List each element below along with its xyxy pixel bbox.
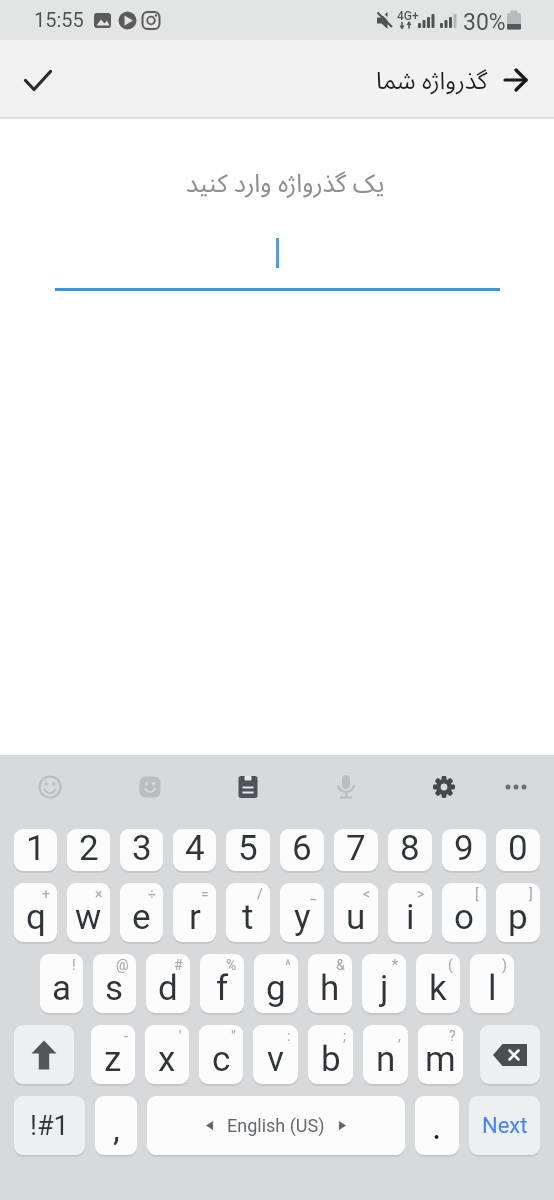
button[interactable]: 0 <box>496 829 540 871</box>
button[interactable]: h <box>308 954 352 1013</box>
button[interactable]: 8 <box>388 829 432 871</box>
staticText: r <box>189 897 201 938</box>
staticText: * <box>392 957 399 973</box>
staticText: ] <box>529 886 533 902</box>
button[interactable]: s <box>93 954 136 1013</box>
button[interactable]: !#1 <box>14 1096 85 1155</box>
button[interactable] <box>0 755 93 819</box>
button[interactable] <box>10 57 66 113</box>
button[interactable]: English (US) <box>147 1096 405 1155</box>
staticText: e <box>132 897 151 938</box>
staticText: p <box>508 897 528 938</box>
button[interactable]: m <box>418 1025 463 1084</box>
staticText: . <box>432 1106 442 1148</box>
button[interactable]: u <box>334 883 378 942</box>
staticText: c <box>212 1039 231 1080</box>
button[interactable]: 6 <box>280 829 324 871</box>
staticText: 1 <box>26 829 46 869</box>
staticText: i <box>406 897 415 938</box>
button[interactable]: 3 <box>120 829 163 871</box>
button[interactable]: n <box>363 1025 408 1084</box>
button[interactable]: o <box>442 883 486 942</box>
button[interactable]: 9 <box>442 829 486 871</box>
staticText: k <box>429 968 447 1009</box>
staticText: ; <box>343 1028 346 1044</box>
button[interactable] <box>462 755 554 819</box>
button[interactable]: g <box>254 954 298 1013</box>
staticText: j <box>380 968 389 1009</box>
button[interactable] <box>278 755 370 819</box>
staticText: 15:55 <box>34 8 84 31</box>
staticText: w <box>75 897 102 938</box>
button[interactable]: e <box>120 883 163 942</box>
staticText: a <box>52 968 72 1009</box>
staticText: # <box>174 957 183 973</box>
button[interactable] <box>14 1025 74 1084</box>
button[interactable]: t <box>226 883 270 942</box>
staticText: ' <box>179 1028 182 1044</box>
button[interactable]: x <box>145 1025 189 1084</box>
button[interactable] <box>480 1025 540 1084</box>
staticText: x <box>158 1039 176 1080</box>
staticText: f <box>216 968 229 1009</box>
staticText: = <box>201 886 209 902</box>
button[interactable]: j <box>362 954 406 1013</box>
staticText: 0 <box>508 829 528 869</box>
button[interactable] <box>93 755 186 819</box>
staticText: u <box>346 897 366 938</box>
button[interactable] <box>370 755 462 819</box>
button[interactable]: Next <box>469 1096 540 1155</box>
button[interactable]: , <box>95 1096 137 1155</box>
button[interactable]: 7 <box>334 829 378 871</box>
button[interactable]: v <box>253 1025 298 1084</box>
button[interactable]: . <box>415 1096 459 1155</box>
staticText: _ <box>310 886 317 902</box>
button[interactable]: y <box>280 883 324 942</box>
button[interactable]: p <box>496 883 540 942</box>
button[interactable]: b <box>308 1025 353 1084</box>
staticText: : <box>287 1028 291 1044</box>
button[interactable]: 2 <box>67 829 110 871</box>
button[interactable]: d <box>146 954 190 1013</box>
button[interactable]: 5 <box>226 829 270 871</box>
staticText: ) <box>502 957 507 973</box>
button[interactable]: z <box>91 1025 135 1084</box>
staticText: g <box>266 968 286 1009</box>
button[interactable]: w <box>67 883 110 942</box>
staticText: @ <box>116 957 129 973</box>
staticText: z <box>104 1039 122 1080</box>
staticText: q <box>26 897 46 938</box>
staticText: % <box>226 957 237 973</box>
staticText: b <box>321 1039 341 1080</box>
staticText: , <box>398 1028 401 1044</box>
staticText: 4 <box>185 829 205 869</box>
staticText: / <box>257 886 263 902</box>
button[interactable]: f <box>200 954 244 1013</box>
button[interactable]: i <box>388 883 432 942</box>
staticText: یک گذرواژه وارد کنید <box>186 165 385 199</box>
button[interactable]: a <box>40 954 83 1013</box>
button[interactable] <box>186 755 278 819</box>
staticText: English (US) <box>227 1115 325 1136</box>
staticText: 8 <box>400 829 420 869</box>
staticText: 7 <box>346 829 366 869</box>
staticText: v <box>267 1039 284 1080</box>
button[interactable]: l <box>470 954 514 1013</box>
staticText: > <box>417 886 425 902</box>
button[interactable]: r <box>173 883 216 942</box>
staticText: m <box>425 1039 456 1080</box>
button[interactable]: 1 <box>14 829 57 871</box>
button[interactable]: c <box>199 1025 243 1084</box>
staticText: 5 <box>238 829 258 869</box>
staticText: ? <box>449 1028 456 1044</box>
staticText: ^ <box>285 957 291 973</box>
button[interactable]: q <box>14 883 57 942</box>
button[interactable]: گذرواژه شما <box>376 63 529 96</box>
staticText: & <box>336 957 345 973</box>
button[interactable]: k <box>416 954 460 1013</box>
staticText: d <box>158 968 178 1009</box>
button[interactable]: 4 <box>173 829 216 871</box>
staticText: !#1 <box>30 1110 69 1142</box>
staticText: - <box>124 1028 128 1044</box>
staticText: [ <box>475 886 479 902</box>
